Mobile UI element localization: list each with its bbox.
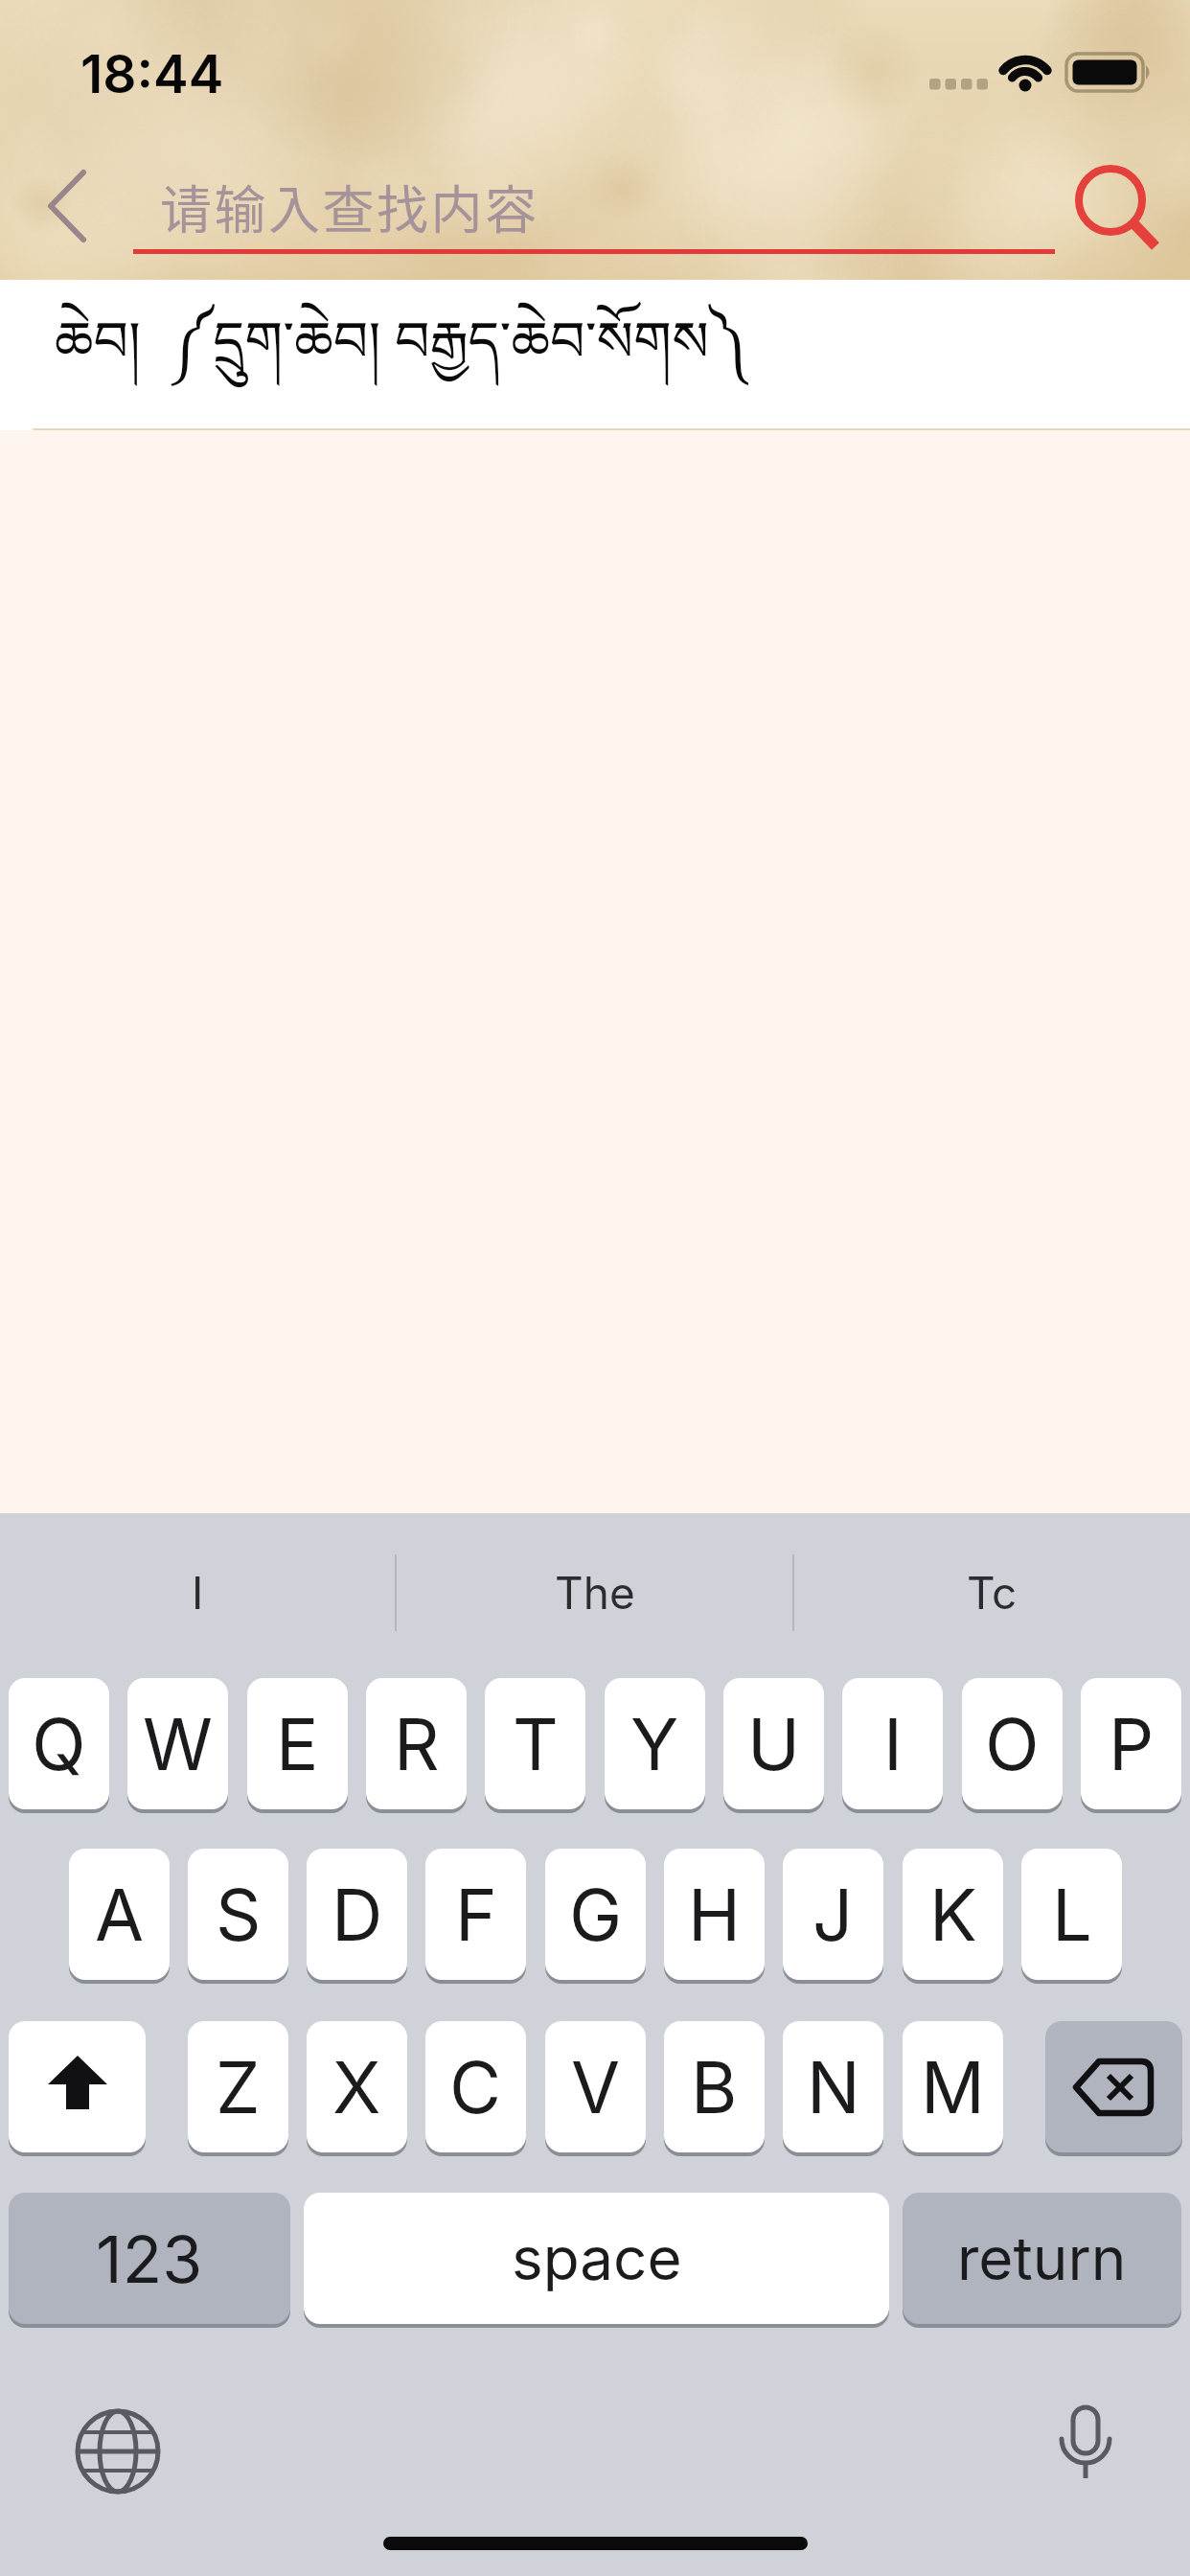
staticText: H: [688, 1872, 741, 1958]
staticText: return: [957, 2222, 1127, 2294]
staticText: P: [1109, 1701, 1155, 1787]
staticText: G: [569, 1872, 623, 1958]
staticText: A: [95, 1872, 145, 1958]
staticText: F: [455, 1872, 497, 1958]
button[interactable]: N: [783, 2021, 883, 2152]
staticText: K: [929, 1872, 977, 1958]
button[interactable]: 123: [9, 2193, 290, 2324]
button[interactable]: I: [0, 1533, 395, 1652]
button[interactable]: Q: [9, 1678, 109, 1809]
staticText: The: [555, 1566, 635, 1620]
staticText: R: [394, 1701, 440, 1787]
staticText: N: [807, 2044, 860, 2130]
button[interactable]: G: [545, 1849, 646, 1980]
button[interactable]: A: [69, 1849, 170, 1980]
staticText: U: [747, 1701, 801, 1787]
button[interactable]: X: [307, 2021, 407, 2152]
staticText: T: [513, 1701, 559, 1787]
button[interactable]: J: [783, 1849, 883, 1980]
button[interactable]: O: [962, 1678, 1063, 1809]
button[interactable]: [1033, 2396, 1138, 2507]
button[interactable]: 请输入查找内容: [133, 163, 1011, 249]
button[interactable]: B: [664, 2021, 765, 2152]
button[interactable]: D: [307, 1849, 407, 1980]
button[interactable]: E: [247, 1678, 348, 1809]
button[interactable]: T: [485, 1678, 585, 1809]
button[interactable]: M: [903, 2021, 1003, 2152]
staticText: M: [921, 2044, 985, 2130]
button[interactable]: W: [127, 1678, 228, 1809]
button[interactable]: V: [545, 2021, 646, 2152]
staticText: C: [449, 2044, 502, 2130]
button[interactable]: [29, 158, 105, 254]
button[interactable]: C: [425, 2021, 526, 2152]
staticText: Q: [32, 1701, 86, 1787]
button[interactable]: K: [903, 1849, 1003, 1980]
button[interactable]: F: [425, 1849, 526, 1980]
staticText: I: [883, 1701, 903, 1787]
button[interactable]: R: [366, 1678, 467, 1809]
button[interactable]: [1062, 153, 1177, 268]
button[interactable]: P: [1081, 1678, 1181, 1809]
button[interactable]: [1045, 2021, 1182, 2152]
button[interactable]: Tc: [794, 1533, 1190, 1652]
button[interactable]: H: [664, 1849, 765, 1980]
staticText: D: [332, 1872, 383, 1958]
staticText: S: [216, 1872, 262, 1958]
staticText: 请输入查找内容: [160, 169, 539, 243]
staticText: ཆེབ། ༼དྲུག་ཆེབ། བརྒྱད་ཆེབ་སོགས༽: [55, 280, 748, 430]
button[interactable]: L: [1021, 1849, 1122, 1980]
staticText: 18:44: [80, 42, 224, 98]
staticText: Z: [216, 2044, 261, 2130]
staticText: I: [192, 1566, 204, 1620]
staticText: L: [1052, 1872, 1092, 1958]
staticText: B: [691, 2044, 738, 2130]
staticText: space: [512, 2222, 682, 2294]
staticText: Tc: [967, 1566, 1018, 1620]
staticText: Y: [630, 1701, 679, 1787]
staticText: O: [985, 1701, 1040, 1787]
button[interactable]: space: [304, 2193, 889, 2324]
staticText: 123: [96, 2219, 203, 2298]
button[interactable]: S: [188, 1849, 288, 1980]
button[interactable]: Z: [188, 2021, 288, 2152]
button[interactable]: U: [723, 1678, 824, 1809]
button[interactable]: Y: [605, 1678, 705, 1809]
staticText: W: [143, 1701, 213, 1787]
button[interactable]: I: [842, 1678, 943, 1809]
button[interactable]: [9, 2021, 146, 2152]
staticText: J: [812, 1872, 854, 1958]
button[interactable]: The: [397, 1533, 792, 1652]
staticText: V: [571, 2044, 621, 2130]
staticText: E: [276, 1701, 319, 1787]
button[interactable]: return: [903, 2193, 1181, 2324]
button[interactable]: [65, 2396, 171, 2507]
staticText: X: [332, 2044, 381, 2130]
